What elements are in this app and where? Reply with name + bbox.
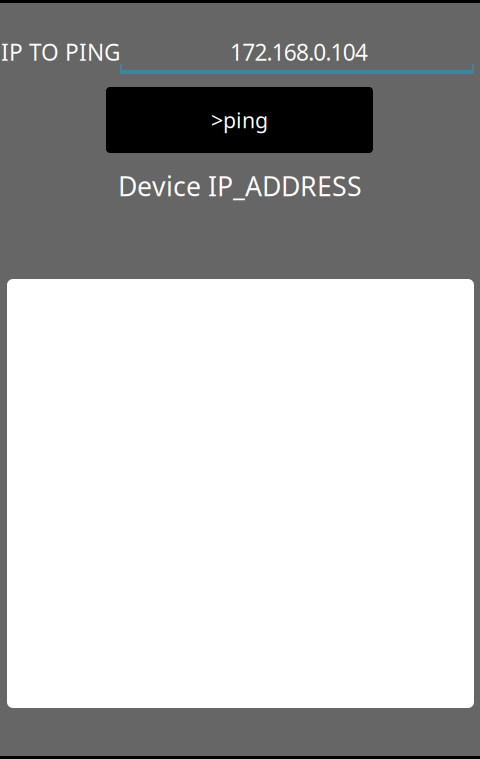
staticText: IP TO PING bbox=[1, 37, 121, 67]
button[interactable]: >ping bbox=[106, 87, 373, 153]
staticText: 172.168.0.104 bbox=[230, 37, 368, 67]
staticText: >ping bbox=[211, 106, 268, 134]
button[interactable]: 172.168.0.104 bbox=[120, 30, 474, 74]
staticText: Device IP_ADDRESS bbox=[118, 168, 362, 204]
